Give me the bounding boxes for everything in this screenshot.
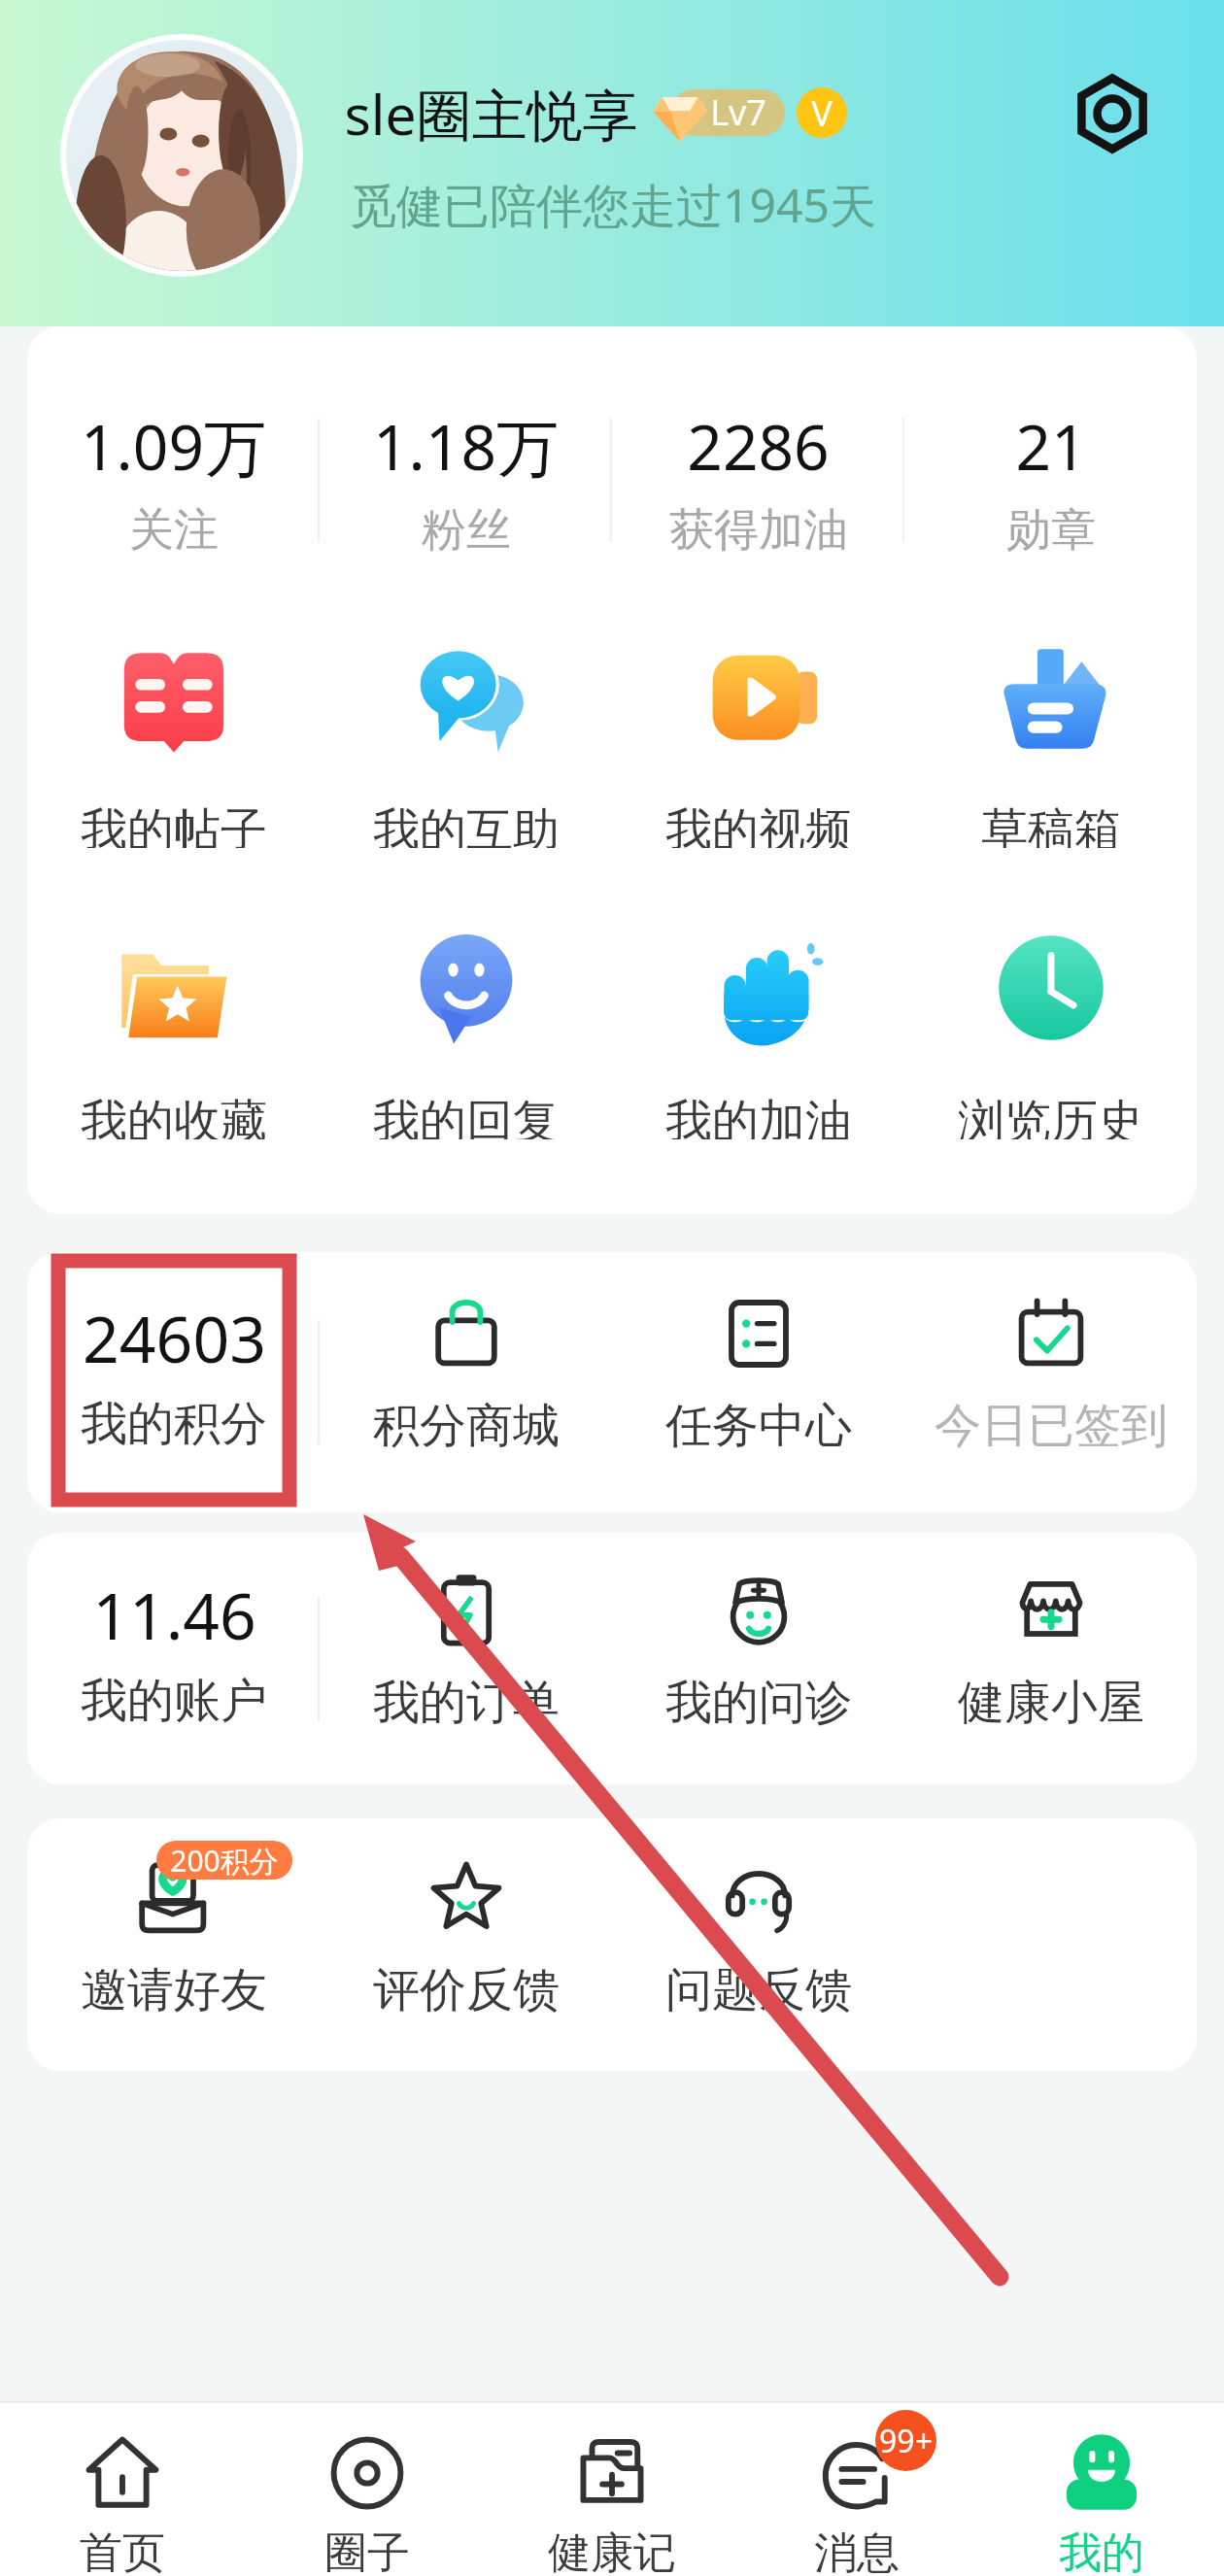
staticText: 浏览历史 <box>958 1093 1144 1139</box>
staticText: 我的加油 <box>665 1093 852 1139</box>
button[interactable]: 24603 <box>27 1252 320 1512</box>
button[interactable]: 草稿箱 <box>904 634 1197 848</box>
staticText: 1.09万 <box>81 404 266 489</box>
staticText: 积分商城 <box>373 1397 560 1455</box>
staticText: 24603 <box>83 1294 266 1381</box>
staticText: 我的回复 <box>373 1093 560 1139</box>
button[interactable]: 健康小屋 <box>904 1533 1197 1776</box>
staticText: 1.18万 <box>373 404 559 489</box>
staticText: 健康小屋 <box>958 1674 1144 1732</box>
staticText: 我的收藏 <box>81 1093 267 1139</box>
staticText: 我的订单 <box>373 1674 560 1732</box>
staticText: 我的互助 <box>373 801 560 848</box>
staticText: 消息 <box>814 2526 900 2576</box>
staticText: 我的视频 <box>665 801 852 848</box>
button[interactable]: 我的回复 <box>320 926 612 1139</box>
staticText: 任务中心 <box>665 1397 852 1455</box>
staticText: 关注 <box>129 502 219 559</box>
button[interactable]: 我的视频 <box>612 634 904 848</box>
staticText: 我的问诊 <box>665 1674 852 1732</box>
staticText: 11.46 <box>92 1571 256 1658</box>
button[interactable]: 2286 <box>612 326 904 598</box>
button[interactable]: 今日已签到 <box>904 1252 1197 1504</box>
button[interactable]: 11.46 <box>27 1533 320 1784</box>
button[interactable]: 我的加油 <box>612 926 904 1139</box>
staticText: 21 <box>1015 404 1087 489</box>
staticText: sle圈主悦享 <box>344 76 638 150</box>
button[interactable]: 我的互助 <box>320 634 612 848</box>
button[interactable]: 积分商城 <box>320 1252 612 1504</box>
staticText: 我的 <box>1059 2526 1144 2576</box>
staticText: 健康记 <box>548 2526 676 2576</box>
button[interactable]: 1.18万 <box>320 326 612 598</box>
button[interactable]: 我的帖子 <box>27 634 320 848</box>
staticText: 圈子 <box>324 2526 410 2576</box>
staticText: 评价反馈 <box>373 1961 560 2019</box>
button[interactable]: Settings <box>1059 60 1166 167</box>
button[interactable]: 圈子 <box>245 2403 490 2576</box>
staticText: 200积分 <box>170 1841 279 1880</box>
staticText: V <box>811 89 833 137</box>
button[interactable]: 99+ <box>734 2403 979 2576</box>
button[interactable]: 首页 <box>0 2403 245 2576</box>
staticText: 我的帖子 <box>81 801 267 848</box>
button[interactable]: 200积分 <box>27 1818 320 2061</box>
button[interactable]: 我的订单 <box>320 1533 612 1776</box>
button[interactable]: 我的 <box>979 2403 1224 2576</box>
staticText: 勋章 <box>1006 502 1096 559</box>
button[interactable]: 我的问诊 <box>612 1533 904 1776</box>
staticText: 问题反馈 <box>665 1961 852 2019</box>
staticText: 我的积分 <box>81 1395 267 1453</box>
staticText: 邀请好友 <box>81 1961 267 2019</box>
button[interactable]: 健康记 <box>490 2403 734 2576</box>
button[interactable]: 21 <box>904 326 1197 598</box>
staticText: 今日已签到 <box>935 1397 1168 1455</box>
button[interactable]: 1.09万 <box>27 326 320 598</box>
staticText: 首页 <box>80 2526 165 2576</box>
staticText: 我的账户 <box>81 1672 267 1730</box>
button[interactable]: Profile avatar <box>66 40 297 271</box>
button[interactable]: 评价反馈 <box>320 1818 612 2061</box>
button[interactable]: 任务中心 <box>612 1252 904 1504</box>
staticText: 99+ <box>879 2420 933 2462</box>
staticText: Lv7 <box>710 88 766 136</box>
staticText: 2286 <box>687 404 830 489</box>
staticText: 粉丝 <box>422 502 511 559</box>
button[interactable]: 问题反馈 <box>612 1818 904 2061</box>
staticText: 获得加油 <box>669 502 848 559</box>
staticText: 觅健已陪伴您走过1945天 <box>350 173 876 237</box>
button[interactable]: 我的收藏 <box>27 926 320 1139</box>
staticText: 草稿箱 <box>981 801 1121 848</box>
button[interactable]: 浏览历史 <box>904 926 1197 1139</box>
